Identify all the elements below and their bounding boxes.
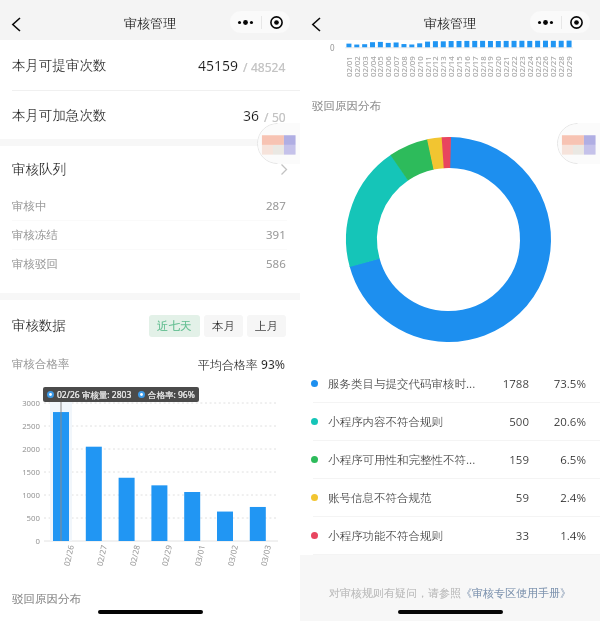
button[interactable]: Floating shortcut	[257, 123, 300, 164]
staticText: 小程序内容不符合规则	[328, 415, 485, 429]
staticText: 02/29	[159, 543, 174, 567]
staticText: /	[243, 59, 248, 75]
staticText: 本月	[212, 319, 235, 333]
button[interactable]: 小程序内容不符合规则	[311, 403, 586, 440]
button[interactable]: 审核队列	[12, 146, 287, 192]
button[interactable]: 本月	[204, 315, 243, 337]
staticText: 02/22	[509, 56, 520, 77]
staticText: 02/15	[454, 56, 465, 77]
staticText: 0	[330, 42, 335, 53]
staticText: 审核管理	[424, 15, 476, 31]
staticText: 391	[266, 227, 286, 243]
staticText: 1000	[0, 490, 40, 501]
button[interactable]: 审核驳回	[12, 250, 286, 278]
staticText: 近七天	[157, 319, 192, 333]
button[interactable]: 本月可提审次数	[12, 40, 286, 90]
staticText: 02/26	[540, 56, 551, 77]
staticText: 02/14	[446, 56, 457, 77]
staticText: 33	[485, 528, 529, 544]
staticText: 02/18	[478, 56, 489, 77]
staticText: 02/02	[352, 56, 363, 77]
button[interactable]: 上月	[247, 315, 286, 337]
staticText: 20.6%	[529, 414, 586, 430]
staticText: 账号信息不符合规范	[328, 491, 485, 505]
button[interactable]: Back	[303, 11, 329, 37]
button[interactable]: 账号信息不符合规范	[311, 479, 586, 516]
button[interactable]: 近七天	[149, 315, 200, 337]
staticText: 02/06	[383, 56, 394, 77]
staticText: 小程序功能不符合规则	[328, 529, 485, 543]
button[interactable]: 本月可加急次数	[12, 91, 286, 139]
staticText: 48524	[251, 59, 286, 75]
staticText: 审核中	[12, 199, 47, 213]
staticText: 45159	[198, 56, 239, 75]
staticText: 02/20	[493, 56, 504, 77]
staticText: 02/23	[517, 56, 528, 77]
staticText: 02/08	[399, 56, 410, 77]
staticText: 驳回原因分布	[312, 99, 381, 113]
button[interactable]: 审核中	[12, 192, 286, 220]
staticText: 0	[0, 536, 40, 547]
staticText: 平均合格率 93%	[198, 356, 286, 372]
staticText: 50	[272, 109, 286, 125]
staticText: 02/24	[525, 56, 536, 77]
staticText: 2.4%	[529, 490, 586, 506]
staticText: 02/26	[61, 543, 76, 567]
staticText: 2500	[0, 421, 40, 432]
staticText: 02/27	[94, 543, 109, 567]
staticText: 287	[266, 198, 286, 214]
staticText: 03/03	[258, 543, 273, 567]
staticText: 3000	[0, 398, 40, 409]
staticText: 02/12	[430, 56, 441, 77]
button[interactable]: 《审核专区使用手册》	[461, 586, 571, 600]
staticText: 上月	[255, 319, 278, 333]
staticText: 1.4%	[529, 528, 586, 544]
staticText: 审核队列	[12, 161, 66, 178]
staticText: 02/03	[360, 56, 371, 77]
staticText: 500	[0, 513, 40, 524]
staticText: 服务类目与提交代码审核时...	[328, 376, 485, 392]
staticText: 02/29	[564, 56, 575, 77]
staticText: 小程序可用性和完整性不符...	[328, 452, 485, 468]
button[interactable]: 小程序功能不符合规则	[311, 517, 586, 554]
staticText: 02/17	[470, 56, 481, 77]
button[interactable]: Floating shortcut	[557, 123, 600, 164]
staticText: 审核数据	[12, 317, 66, 334]
staticText: 02/10	[415, 56, 426, 77]
staticText: 02/25	[533, 56, 544, 77]
staticText: 02/26 审核量: 2803	[57, 389, 132, 401]
staticText: 02/28	[556, 56, 567, 77]
staticText: 2000	[0, 444, 40, 455]
staticText: 对审核规则有疑问，请参照	[329, 586, 461, 600]
staticText: 02/27	[548, 56, 559, 77]
staticText: 审核驳回	[12, 257, 58, 271]
staticText: 36	[243, 106, 260, 125]
staticText: 02/09	[407, 56, 418, 77]
staticText: 02/28	[127, 543, 142, 567]
staticText: 驳回原因分布	[12, 592, 81, 606]
staticText: 审核合格率	[12, 357, 70, 371]
staticText: 02/11	[423, 56, 434, 77]
staticText: 审核冻结	[12, 228, 58, 242]
staticText: 02/13	[438, 56, 449, 77]
button[interactable]: 服务类目与提交代码审核时...	[311, 365, 586, 402]
staticText: 审核管理	[124, 15, 176, 31]
button[interactable]: More options	[530, 11, 590, 33]
staticText: 02/19	[485, 56, 496, 77]
staticText: 586	[266, 256, 286, 272]
staticText: 159	[485, 452, 529, 468]
button[interactable]: Back	[3, 11, 29, 37]
staticText: 500	[485, 414, 529, 430]
staticText: 本月可加急次数	[12, 107, 107, 124]
staticText: 73.5%	[529, 376, 586, 392]
button[interactable]: 审核冻结	[12, 221, 286, 249]
staticText: 合格率: 96%	[148, 389, 195, 401]
staticText: 本月可提审次数	[12, 57, 107, 74]
staticText: 03/01	[192, 543, 207, 567]
staticText: 1788	[485, 376, 529, 392]
staticText: 02/04	[368, 56, 379, 77]
staticText: 59	[485, 490, 529, 506]
button[interactable]: 小程序可用性和完整性不符...	[311, 441, 586, 478]
staticText: 6.5%	[529, 452, 586, 468]
button[interactable]: More options	[230, 11, 290, 33]
